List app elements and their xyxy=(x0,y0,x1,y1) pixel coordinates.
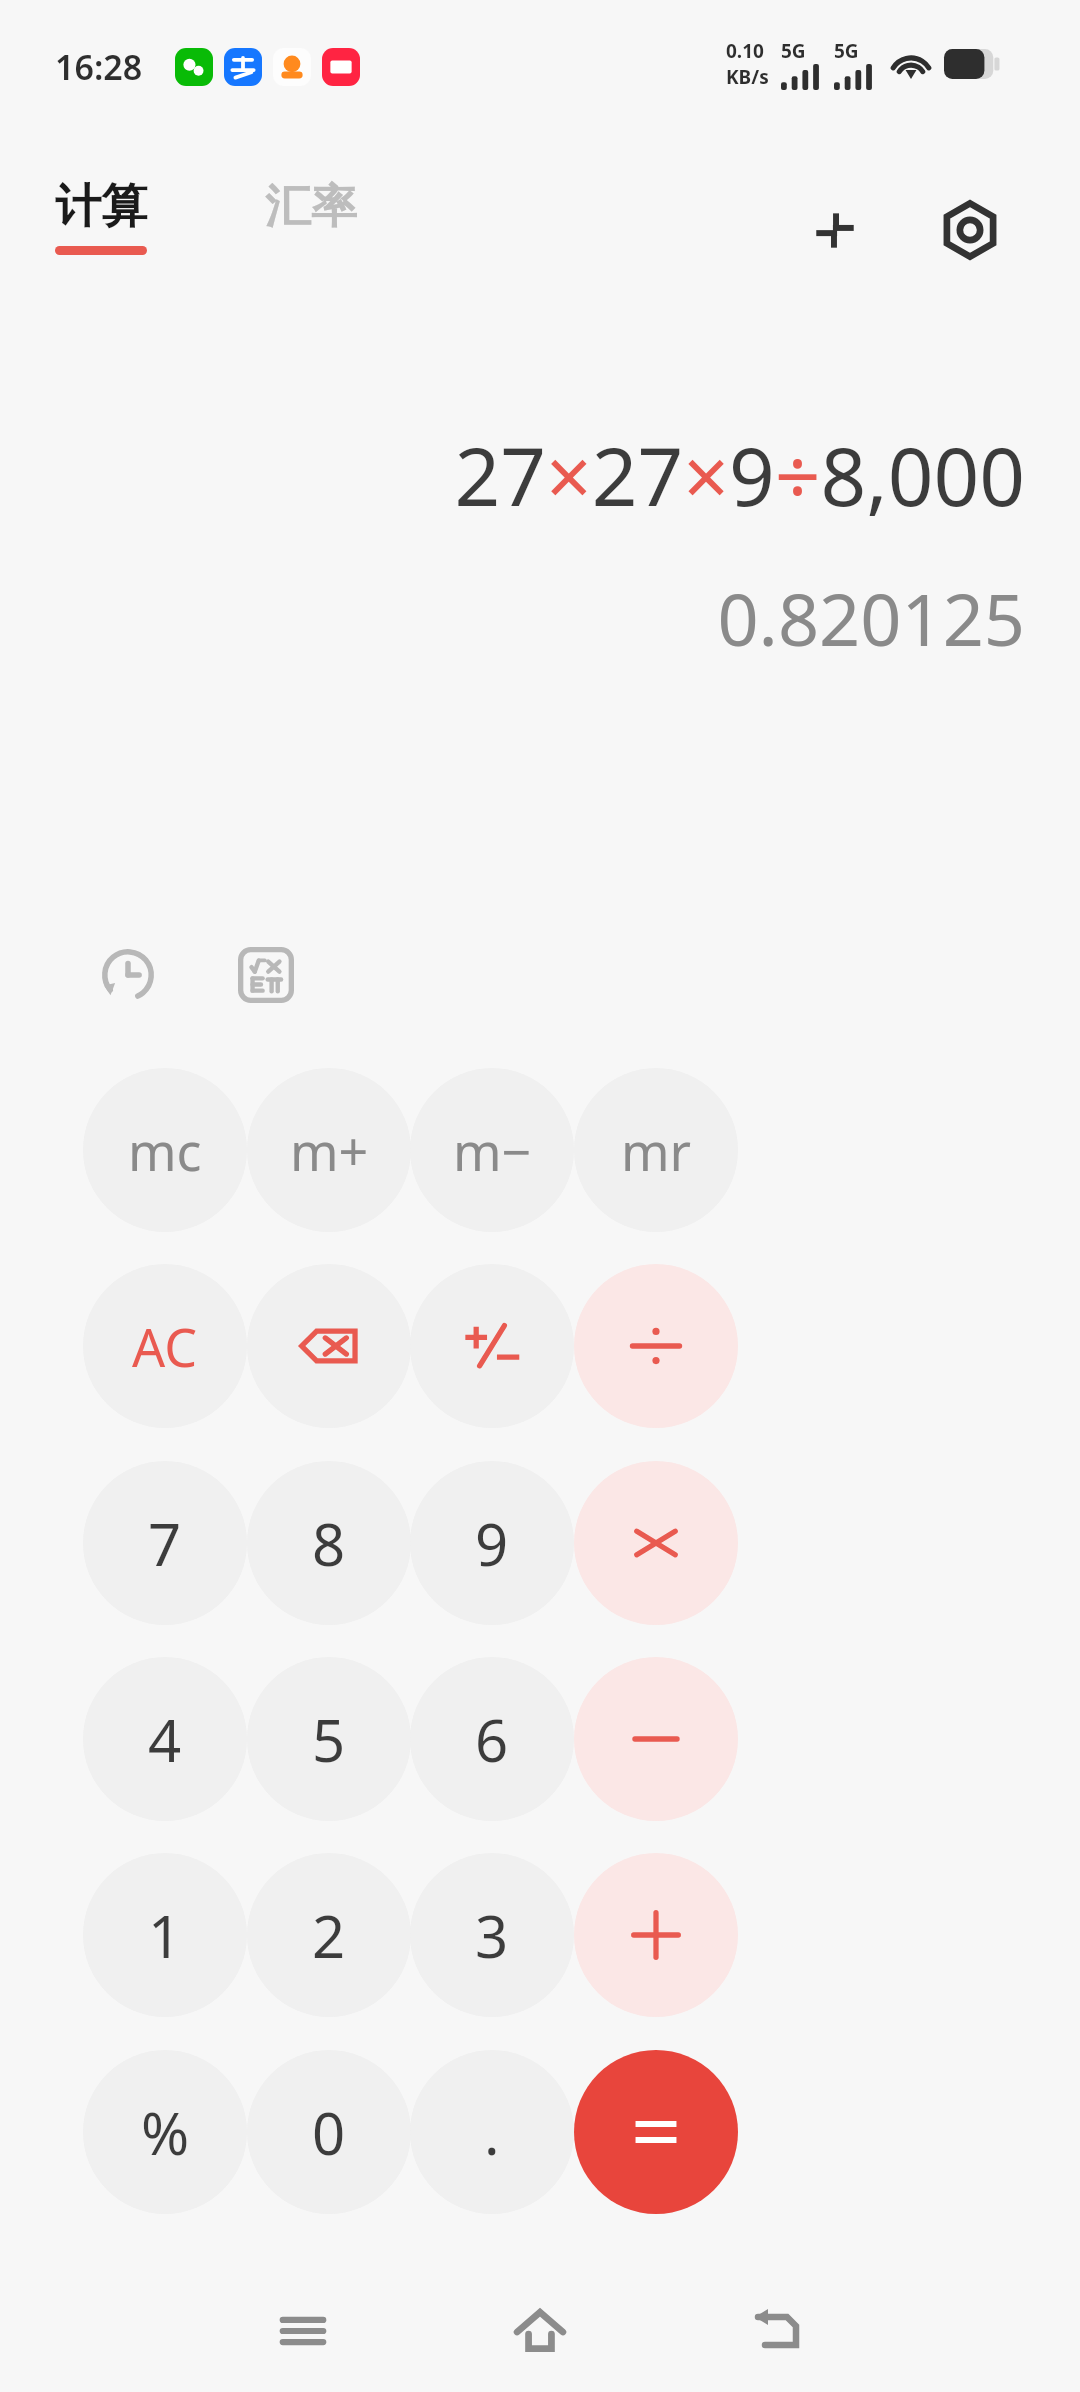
staticText: 6 xyxy=(475,1700,509,1779)
staticText: m− xyxy=(453,1115,532,1186)
button[interactable]: History xyxy=(78,925,178,1025)
button[interactable]: Recents xyxy=(242,2270,364,2392)
button[interactable]: 3 xyxy=(410,1853,574,2017)
staticText: 27×27×9÷8,000 xyxy=(454,420,1025,529)
staticText: m+ xyxy=(290,1115,369,1186)
button[interactable]: mc xyxy=(83,1068,247,1232)
button[interactable]: m+ xyxy=(247,1068,411,1232)
button[interactable]: Divide xyxy=(574,1264,738,1428)
staticText: 0.820125 xyxy=(717,569,1025,667)
staticText: 7 xyxy=(148,1504,182,1583)
staticText: mc xyxy=(128,1115,202,1186)
button[interactable]: 6 xyxy=(410,1657,574,1821)
staticText: 8 xyxy=(312,1504,346,1583)
button[interactable]: Backspace xyxy=(247,1264,411,1428)
button[interactable]: 汇率 xyxy=(265,178,357,236)
button[interactable]: Minus xyxy=(574,1657,738,1821)
button[interactable]: Scientific mode xyxy=(216,925,316,1025)
button[interactable]: m− xyxy=(410,1068,574,1232)
staticText: 5G xyxy=(781,38,806,64)
button[interactable]: AC xyxy=(83,1264,247,1428)
button[interactable]: 9 xyxy=(410,1461,574,1625)
staticText: 3 xyxy=(475,1896,509,1975)
staticText: 5G xyxy=(834,38,859,64)
button[interactable]: 8 xyxy=(247,1461,411,1625)
staticText: 0.10 xyxy=(726,38,764,64)
button[interactable]: Home xyxy=(479,2270,601,2392)
button[interactable]: . xyxy=(410,2050,574,2214)
staticText: mr xyxy=(621,1115,692,1186)
button[interactable]: Equals xyxy=(574,2050,738,2214)
staticText: 计算 xyxy=(55,178,147,236)
button[interactable]: 计算 xyxy=(55,178,147,255)
button[interactable]: 1 xyxy=(83,1853,247,2017)
staticText: 汇率 xyxy=(265,178,357,236)
staticText: 4 xyxy=(148,1700,182,1779)
staticText: . xyxy=(484,2093,500,2172)
staticText: 0 xyxy=(312,2093,346,2172)
button[interactable]: Multiply xyxy=(574,1461,738,1625)
staticText: 2 xyxy=(312,1896,346,1975)
button[interactable]: Expand xyxy=(787,182,883,278)
button[interactable]: 2 xyxy=(247,1853,411,2017)
staticText: 16:28 xyxy=(55,44,143,90)
button[interactable]: Plus minus xyxy=(410,1264,574,1428)
button[interactable]: 4 xyxy=(83,1657,247,1821)
button[interactable]: 5 xyxy=(247,1657,411,1821)
button[interactable]: Settings xyxy=(922,182,1018,278)
staticText: AC xyxy=(132,1311,198,1382)
button[interactable]: Plus xyxy=(574,1853,738,2017)
button[interactable]: 0 xyxy=(247,2050,411,2214)
staticText: KB/s xyxy=(726,64,769,90)
button[interactable]: % xyxy=(83,2050,247,2214)
staticText: % xyxy=(141,2093,190,2172)
button[interactable]: mr xyxy=(574,1068,738,1232)
staticText: 1 xyxy=(148,1896,182,1975)
button[interactable]: Back xyxy=(716,2270,838,2392)
staticText: 5 xyxy=(312,1700,346,1779)
button[interactable]: 7 xyxy=(83,1461,247,1625)
staticText: 9 xyxy=(475,1504,509,1583)
